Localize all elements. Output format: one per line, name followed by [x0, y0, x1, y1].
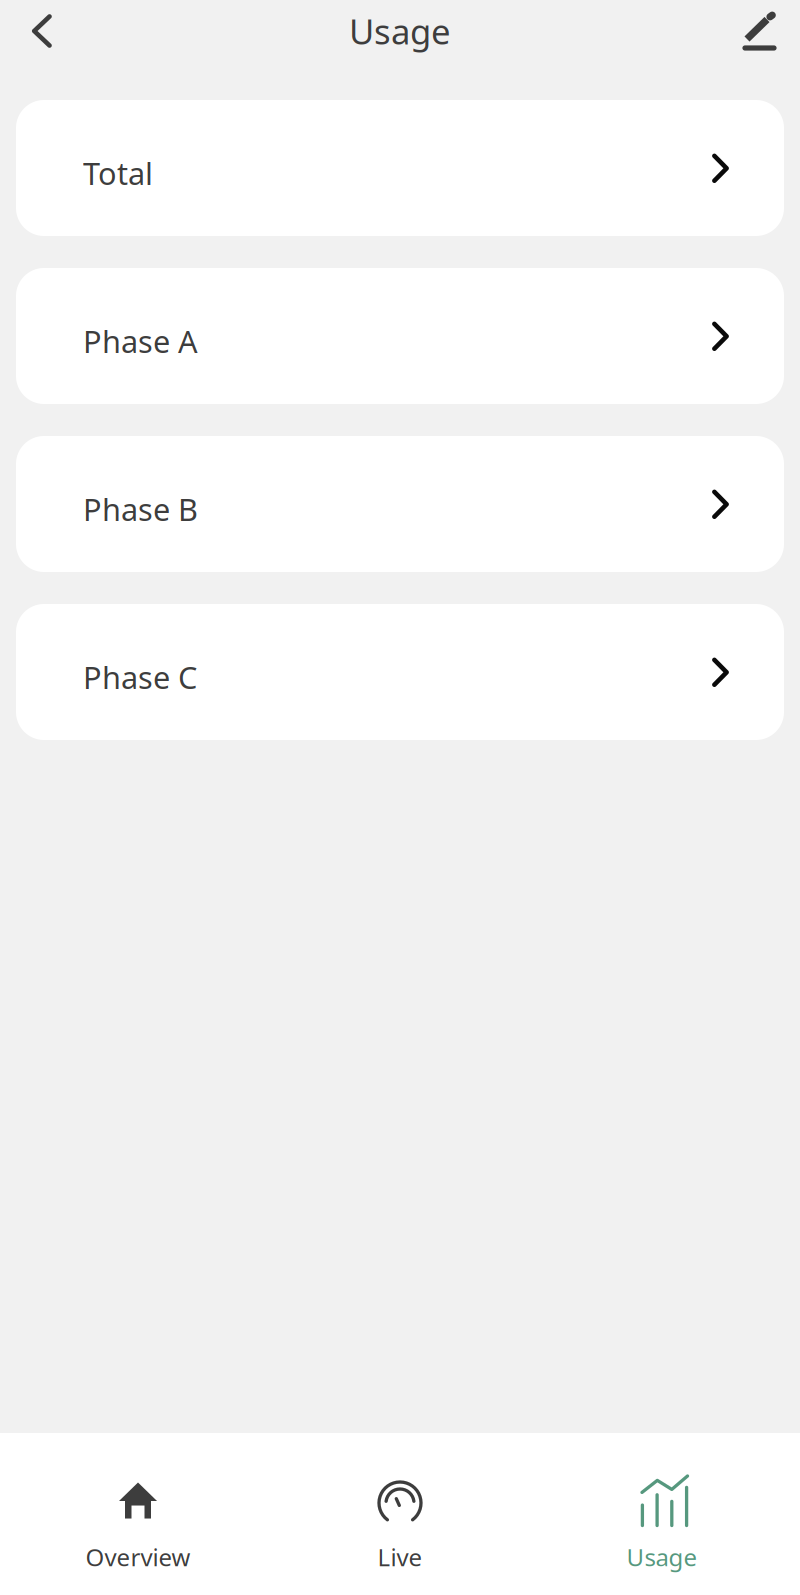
button[interactable]: Live — [276, 1433, 524, 1595]
staticText: Phase C — [83, 657, 197, 697]
button[interactable]: Back — [0, 0, 78, 66]
staticText: Phase A — [83, 321, 198, 361]
staticText: Phase B — [83, 489, 198, 529]
button[interactable]: Phase C — [16, 604, 784, 740]
button[interactable]: Overview — [0, 1433, 276, 1595]
staticText: Usage — [349, 8, 451, 54]
staticText: Live — [377, 1541, 422, 1573]
button[interactable]: Total — [16, 100, 784, 236]
staticText: Overview — [85, 1541, 190, 1573]
button[interactable]: Phase B — [16, 436, 784, 572]
button[interactable]: Edit — [722, 0, 800, 66]
staticText: Total — [83, 153, 153, 193]
staticText: Usage — [626, 1541, 697, 1573]
button[interactable]: Usage — [524, 1433, 800, 1595]
button[interactable]: Phase A — [16, 268, 784, 404]
